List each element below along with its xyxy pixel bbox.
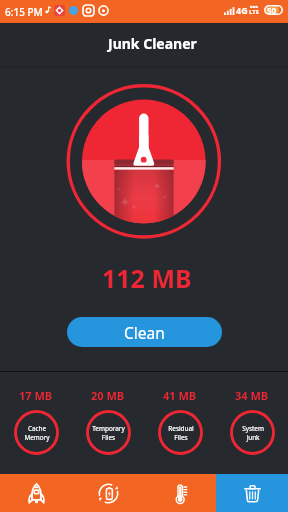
button[interactable]: 34 MB (216, 388, 288, 455)
button[interactable]: CPU Cooler (144, 474, 216, 512)
staticText: LTE (249, 8, 260, 16)
staticText: 6:15 PM (5, 5, 43, 19)
button[interactable]: Junk Cleaner (216, 474, 288, 512)
staticText: Junk Cleaner (108, 34, 197, 53)
button[interactable]: 41 MB (144, 388, 216, 455)
staticText: System Junk (242, 424, 264, 442)
staticText: 20 MB (91, 388, 125, 403)
button[interactable]: Phone Boost (0, 474, 72, 512)
staticText: 17 MB (19, 388, 53, 403)
staticText: 34 MB (235, 388, 269, 403)
staticText: Residual Files (168, 424, 194, 442)
staticText: Clean (124, 322, 165, 343)
staticText: 4G (236, 4, 248, 16)
staticText: 41 MB (163, 388, 197, 403)
button[interactable]: Battery Saver (72, 474, 144, 512)
button[interactable]: Clean (67, 317, 222, 347)
staticText: 112 MB (102, 261, 192, 293)
button[interactable]: 20 MB (72, 388, 144, 455)
staticText: Temporary Files (92, 424, 125, 442)
staticText: Cache Memory (24, 424, 50, 442)
staticText: 50 (267, 5, 277, 15)
staticText: ▪▪▪ (250, 4, 259, 9)
button[interactable]: 17 MB (0, 388, 72, 455)
